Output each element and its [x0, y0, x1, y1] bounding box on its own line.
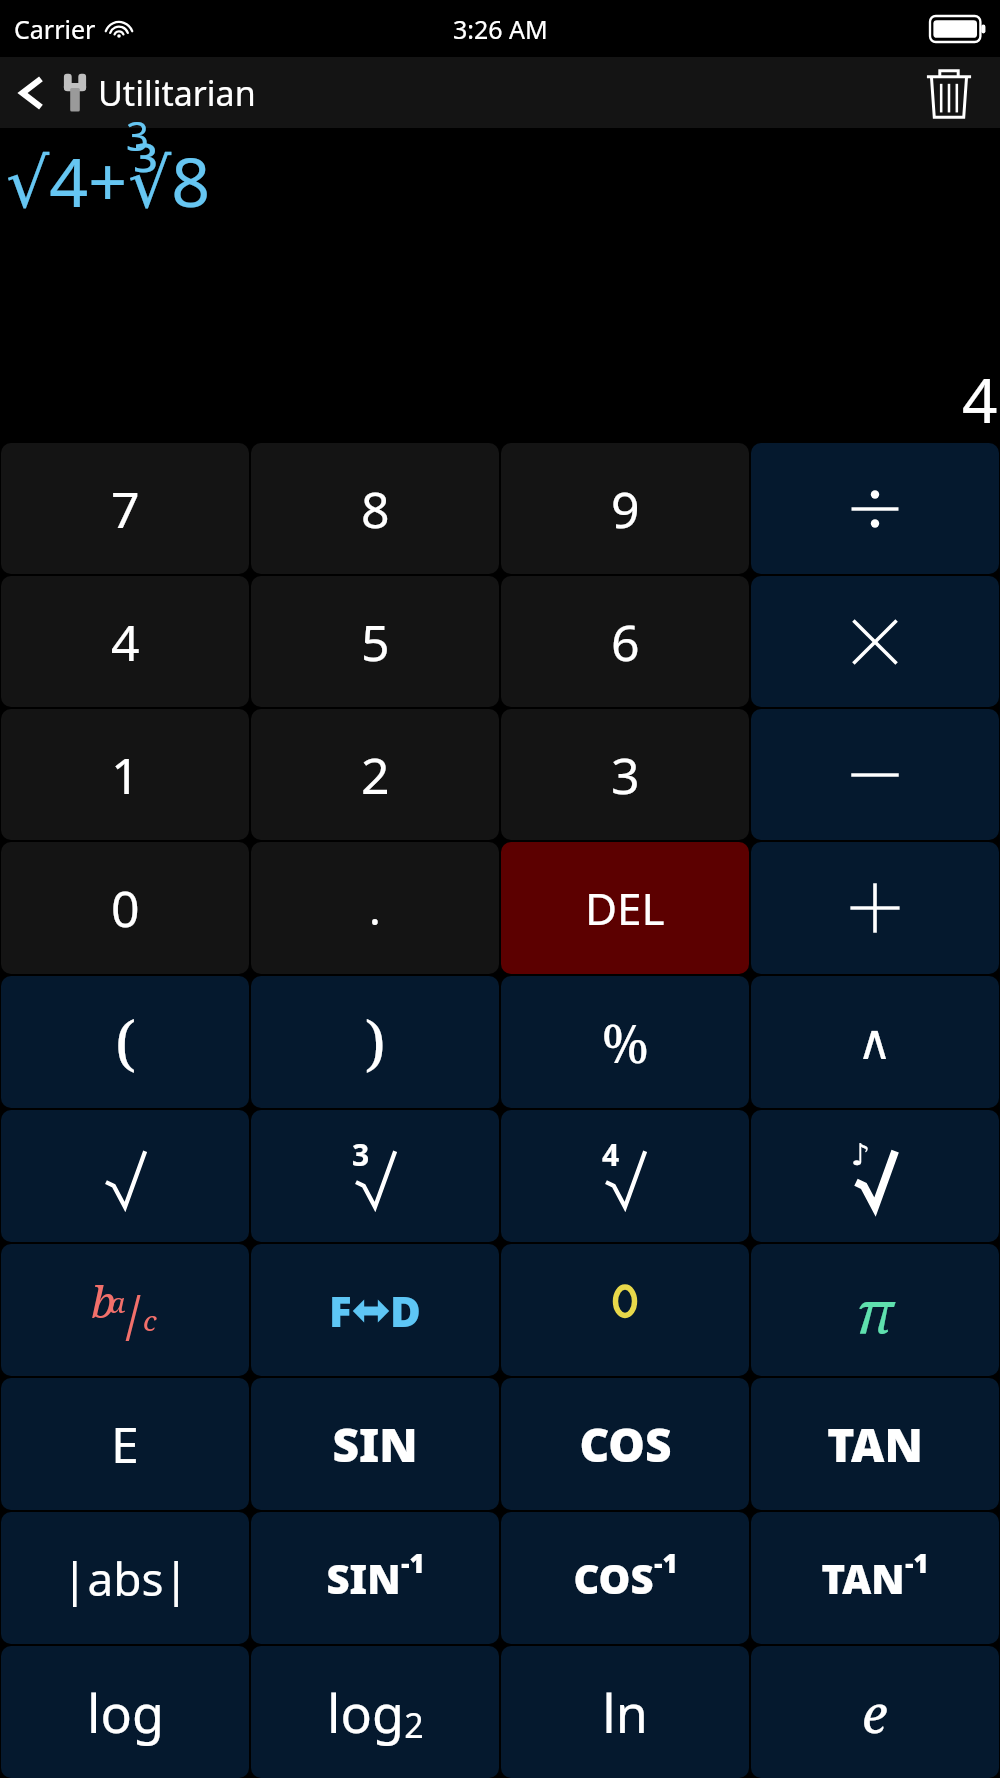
- staticText: 3: [352, 1134, 370, 1175]
- staticText: 3:26 AM: [453, 12, 548, 46]
- button[interactable]: key: [251, 1244, 499, 1376]
- button[interactable]: key: [751, 842, 999, 974]
- staticText: ∛8: [128, 134, 211, 227]
- button[interactable]: key: [751, 1244, 999, 1376]
- button[interactable]: key: [501, 1110, 749, 1242]
- button[interactable]: key: [1, 1646, 249, 1778]
- other: Root: [97, 1145, 153, 1207]
- button[interactable]: key: [1, 976, 249, 1108]
- button[interactable]: key: [751, 576, 999, 707]
- button[interactable]: .: [251, 842, 499, 974]
- other: Degree: [608, 1287, 642, 1333]
- staticText: TAN: [821, 1551, 905, 1605]
- other: Minus: [848, 748, 902, 802]
- staticText: -1: [654, 1545, 678, 1580]
- staticText: ): [365, 1001, 386, 1083]
- other: Back: [18, 71, 46, 115]
- staticText: π: [856, 1271, 894, 1350]
- button[interactable]: 8: [251, 443, 499, 574]
- staticText: SIN: [326, 1551, 401, 1605]
- button[interactable]: key: [751, 1512, 999, 1644]
- button[interactable]: key: [751, 709, 999, 840]
- button[interactable]: key: [1, 1110, 249, 1242]
- staticText: 3: [126, 108, 149, 162]
- button[interactable]: key: [251, 1378, 499, 1510]
- button[interactable]: key: [1, 1244, 249, 1376]
- other: Root: [597, 1145, 653, 1207]
- staticText: 9: [611, 475, 640, 543]
- other: Root: [847, 1145, 903, 1207]
- staticText: 4: [602, 1134, 620, 1175]
- button[interactable]: 1: [1, 709, 249, 840]
- staticText: 8: [361, 475, 390, 543]
- button[interactable]: key: [751, 1110, 999, 1242]
- staticText: a: [109, 1283, 126, 1321]
- staticText: 2: [361, 741, 390, 809]
- button[interactable]: 9: [501, 443, 749, 574]
- button[interactable]: key: [501, 976, 749, 1108]
- button[interactable]: key: [751, 1378, 999, 1510]
- staticText: TAN: [827, 1413, 923, 1476]
- button[interactable]: key: [251, 1110, 499, 1242]
- staticText: b: [91, 1271, 116, 1331]
- staticText: 2: [404, 1702, 424, 1748]
- button[interactable]: key: [751, 1646, 999, 1778]
- staticText: log: [327, 1677, 404, 1748]
- other: Fraction: [85, 1279, 165, 1341]
- staticText: (: [115, 1001, 136, 1083]
- staticText: -1: [905, 1545, 929, 1580]
- staticText: 5: [361, 608, 390, 676]
- staticText: /: [125, 1279, 141, 1341]
- staticText: COS: [573, 1551, 654, 1605]
- staticText: SIN: [332, 1413, 418, 1476]
- staticText: c: [143, 1301, 157, 1339]
- button[interactable]: Back: [0, 64, 268, 122]
- button[interactable]: key: [751, 443, 999, 574]
- other: Plus: [847, 880, 903, 936]
- button[interactable]: key: [501, 1512, 749, 1644]
- button[interactable]: 5: [251, 576, 499, 707]
- button[interactable]: key: [1, 1378, 249, 1510]
- staticText: .: [369, 878, 381, 938]
- button[interactable]: key: [251, 1646, 499, 1778]
- button[interactable]: 3: [501, 709, 749, 840]
- staticText: ∧: [857, 1014, 893, 1070]
- button[interactable]: 2: [251, 709, 499, 840]
- staticText: %: [602, 1007, 649, 1078]
- staticText: 6: [611, 608, 640, 676]
- staticText: 3: [611, 741, 640, 809]
- staticText: ln: [602, 1677, 648, 1748]
- staticText: Utilitarian: [98, 70, 256, 116]
- staticText: F: [329, 1282, 352, 1339]
- staticText: -1: [401, 1545, 425, 1580]
- staticText: D: [390, 1282, 421, 1339]
- staticText: COS: [579, 1413, 672, 1476]
- staticText: 0: [111, 874, 140, 942]
- staticText: DEL: [585, 878, 665, 938]
- other: Root: [347, 1145, 403, 1207]
- other: Multiply: [848, 615, 902, 669]
- staticText: log: [87, 1677, 164, 1748]
- button[interactable]: key: [751, 976, 999, 1108]
- button[interactable]: key: [1, 1512, 249, 1644]
- staticText: |abs|: [62, 1547, 189, 1610]
- button[interactable]: DEL: [501, 842, 749, 974]
- staticText: √4+: [6, 134, 128, 227]
- button[interactable]: key: [251, 1512, 499, 1644]
- button[interactable]: key: [501, 1378, 749, 1510]
- staticText: 4: [962, 357, 998, 441]
- button[interactable]: 6: [501, 576, 749, 707]
- staticText: 7: [111, 475, 140, 543]
- staticText: 1: [111, 741, 140, 809]
- staticText: 4: [111, 608, 140, 676]
- button[interactable]: 7: [1, 443, 249, 574]
- other: Divide: [847, 481, 903, 537]
- button[interactable]: key: [501, 1646, 749, 1778]
- button[interactable]: Delete: [918, 62, 1000, 124]
- button[interactable]: 4: [1, 576, 249, 707]
- button[interactable]: key: [251, 976, 499, 1108]
- button[interactable]: key: [501, 1244, 749, 1376]
- button[interactable]: 0: [1, 842, 249, 974]
- staticText: e: [862, 1677, 888, 1748]
- other: Fraction decimal toggle: [352, 1294, 390, 1328]
